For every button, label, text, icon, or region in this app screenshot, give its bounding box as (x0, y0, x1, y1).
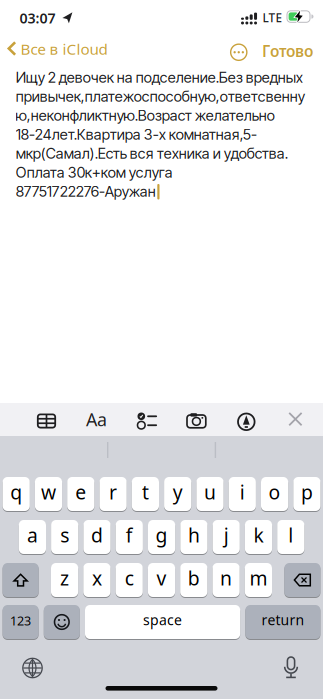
button[interactable]: q (3, 477, 30, 511)
button[interactable]: Markup (237, 413, 255, 431)
button[interactable]: u (196, 477, 224, 511)
staticText: a (27, 522, 38, 548)
staticText: 87751722276-Аружан (16, 182, 156, 200)
button[interactable]: Camera (187, 413, 206, 428)
staticText: n (220, 565, 232, 591)
staticText: Готово (262, 40, 313, 61)
staticText: 18-24лет.Квартира 3-х комнатная,5- (16, 125, 257, 143)
button[interactable]: e (67, 477, 94, 511)
staticText: q (10, 479, 22, 505)
button[interactable]: space (85, 605, 240, 639)
button[interactable]: g (148, 520, 175, 554)
staticText: k (253, 522, 263, 548)
staticText: l (288, 522, 293, 548)
button[interactable]: Checklist (137, 412, 157, 429)
button[interactable]: Shift (3, 563, 39, 597)
button[interactable]: n (212, 563, 240, 597)
staticText: j (224, 522, 229, 548)
button[interactable]: return (245, 605, 320, 639)
staticText: t (142, 479, 149, 505)
button[interactable]: i (229, 477, 256, 511)
button[interactable]: x (83, 563, 110, 597)
staticText: x (92, 565, 102, 591)
staticText: LTE (262, 10, 282, 26)
staticText: s (60, 522, 69, 548)
button[interactable]: f (116, 520, 143, 554)
button[interactable]: o (261, 477, 288, 511)
button[interactable]: More (230, 44, 247, 60)
button[interactable]: m (245, 563, 272, 597)
staticText: space (143, 610, 182, 629)
button[interactable]: v (148, 563, 175, 597)
staticText: f (126, 522, 133, 548)
button[interactable]: b (180, 563, 207, 597)
staticText: i (240, 479, 245, 505)
staticText: Aa (86, 407, 107, 431)
button[interactable]: Back (7, 38, 107, 59)
staticText: ю,неконфликтную.Возраст желательно (16, 106, 275, 124)
staticText: return (261, 610, 304, 629)
button[interactable]: Готово (262, 40, 313, 61)
staticText: c (125, 565, 134, 591)
staticText: o (269, 479, 281, 505)
staticText: m (249, 565, 267, 591)
staticText: y (173, 479, 183, 505)
button[interactable]: z (51, 563, 78, 597)
button[interactable]: w (35, 477, 62, 511)
button[interactable]: t (132, 477, 159, 511)
button[interactable]: s (51, 520, 78, 554)
button[interactable]: d (83, 520, 111, 554)
staticText: r (109, 479, 117, 505)
staticText: u (204, 479, 216, 505)
staticText: v (156, 565, 166, 591)
staticText: 03:07 (19, 8, 55, 27)
button[interactable]: Insert table (37, 414, 55, 428)
button[interactable]: r (99, 477, 127, 511)
button[interactable]: y (164, 477, 191, 511)
staticText: g (156, 522, 168, 548)
staticText: привычек,платежоспособную,ответсвенну (16, 87, 305, 105)
staticText: Ищу 2 девочек на подселение.Без вредных (16, 68, 303, 86)
staticText: e (75, 479, 86, 505)
button[interactable]: Dismiss keyboard (288, 412, 302, 426)
staticText: d (91, 522, 103, 548)
button[interactable]: Delete (284, 563, 320, 597)
button[interactable]: h (180, 520, 207, 554)
staticText: z (60, 565, 69, 591)
button[interactable]: k (245, 520, 272, 554)
button[interactable]: Dictate (284, 657, 298, 678)
button[interactable]: Emoji (44, 605, 80, 639)
button[interactable]: l (277, 520, 304, 554)
staticText: Оплата 30к+ком услуга (16, 163, 173, 181)
button[interactable]: a (19, 520, 46, 554)
button[interactable]: c (116, 563, 143, 597)
staticText: h (188, 522, 200, 548)
staticText: 123 (10, 612, 31, 629)
staticText: b (188, 565, 200, 591)
staticText: p (301, 479, 313, 505)
staticText: мкр(Самал).Есть вся техника и удобства. (16, 144, 288, 162)
button[interactable]: j (213, 520, 240, 554)
staticText: w (41, 479, 56, 505)
button[interactable]: Next keyboard (22, 658, 42, 678)
staticText: Все в iCloud (20, 38, 107, 59)
button[interactable]: Formatting (86, 407, 107, 431)
button[interactable]: Numbers (3, 605, 39, 639)
button[interactable]: p (293, 477, 320, 511)
